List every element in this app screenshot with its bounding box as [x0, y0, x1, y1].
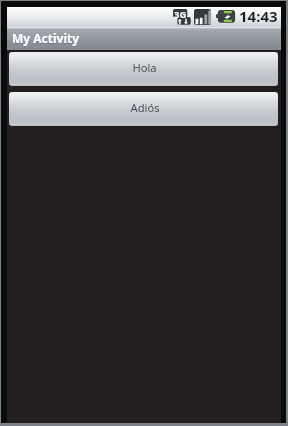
staticText: My Activity — [12, 30, 80, 46]
staticText: Hola — [132, 60, 157, 75]
staticText: 3G — [174, 8, 187, 21]
staticText: My Activity — [12, 31, 80, 47]
staticText: Adiós — [130, 100, 160, 115]
staticText: 14:43 — [239, 6, 278, 26]
button[interactable]: Hola — [7, 50, 281, 90]
button[interactable]: Adiós — [7, 90, 281, 130]
other: Battery charging — [216, 10, 236, 23]
